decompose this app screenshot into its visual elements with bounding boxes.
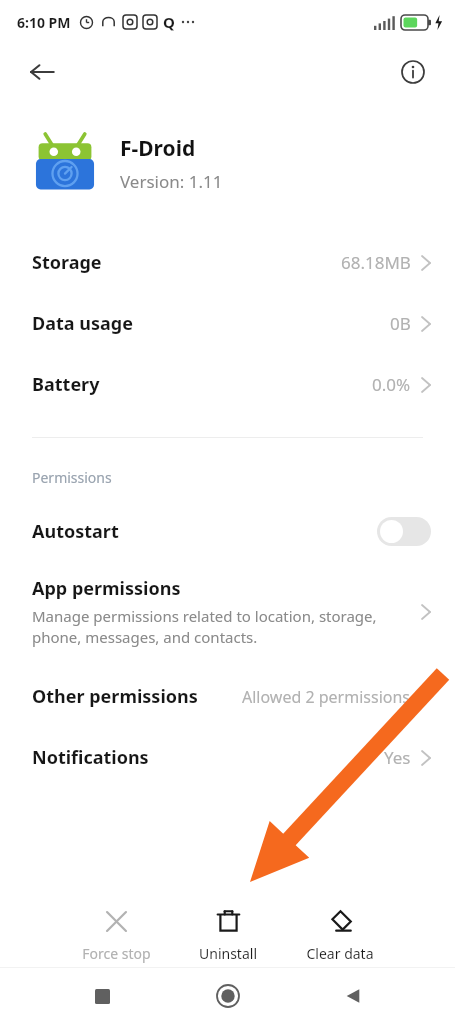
button[interactable]: Other permissions [0,666,455,727]
staticText: Notifications [32,745,149,770]
staticText: Data usage [32,311,133,336]
button[interactable]: Home [204,972,252,1020]
button[interactable]: Clear data [298,904,382,967]
button[interactable]: Battery [0,354,455,415]
staticText: 68.18MB [341,251,411,274]
staticText: F-Droid [120,134,196,163]
staticText: 6:10 PM [17,13,71,32]
staticText: Permissions [32,468,112,487]
staticText: Manage permissions related to location, … [32,606,411,648]
staticText: Storage [32,250,102,275]
staticText: Clear data [306,944,374,963]
button[interactable]: Autostart [0,511,455,552]
button[interactable]: Storage [0,232,455,293]
button[interactable]: Data usage [0,293,455,354]
button[interactable]: Uninstall [186,904,270,967]
staticText: Uninstall [199,944,257,963]
staticText: Other permissions [32,684,198,709]
button[interactable]: Recent apps [78,972,126,1020]
staticText: Allowed 2 permissions [242,686,411,708]
button[interactable]: App permissions [0,572,455,652]
button[interactable]: Notifications [0,727,455,788]
staticText: Yes [384,746,411,769]
staticText: Version: 1.11 [120,170,223,193]
staticText: 0B [390,312,411,335]
staticText: Battery [32,372,100,397]
staticText: App permissions [32,576,181,601]
staticText: 0.0% [372,373,411,396]
button[interactable]: Back [20,50,64,94]
staticText: Q [163,12,175,32]
button[interactable]: About [391,50,435,94]
staticText: Autostart [32,519,119,544]
staticText: Force stop [82,944,151,963]
button[interactable]: Back [329,972,377,1020]
button[interactable]: Force stop [74,904,158,967]
